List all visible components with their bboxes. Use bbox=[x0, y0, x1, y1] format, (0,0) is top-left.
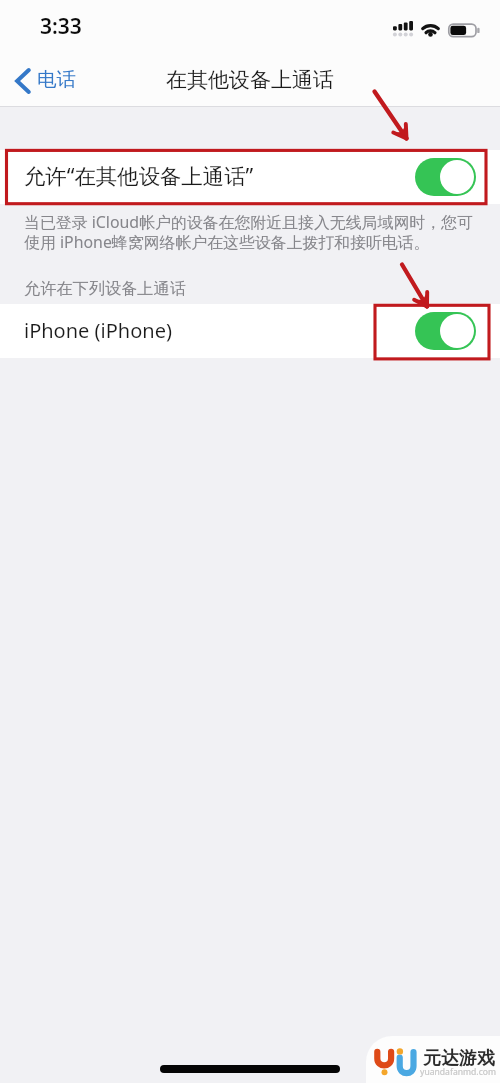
staticText: 当已登录 iCloud帐户的设备在您附近且接入无线局域网时，您可 使用 iPho… bbox=[24, 211, 490, 253]
staticText: 3:33 bbox=[40, 12, 82, 41]
staticText: 允许在下列设备上通话 bbox=[24, 278, 500, 298]
button[interactable]: Toggle on bbox=[415, 312, 476, 350]
staticText: iPhone (iPhone) bbox=[24, 317, 172, 344]
staticText: yuandafanmd.com bbox=[420, 1066, 497, 1078]
button[interactable]: iPhone (iPhone) bbox=[0, 304, 500, 358]
staticText: 在其他设备上通话 bbox=[166, 67, 334, 93]
staticText: 元达游戏 bbox=[423, 1047, 495, 1070]
button[interactable]: Toggle on bbox=[415, 158, 476, 196]
staticText: 允许“在其他设备上通话” bbox=[24, 161, 254, 190]
staticText: 电话 bbox=[37, 67, 76, 92]
button[interactable]: 允许“在其他设备上通话” bbox=[0, 150, 500, 204]
button[interactable]: Back to 电话 bbox=[0, 63, 84, 99]
